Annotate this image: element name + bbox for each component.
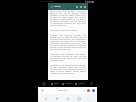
staticText: Quisquam est, qui dolorem ipsum quia dol… — [50, 64, 86, 74]
staticText: Archive — [78, 82, 85, 85]
button[interactable]: Reply — [51, 81, 59, 86]
staticText: Forward — [65, 82, 73, 85]
staticText: news.site — [58, 89, 68, 92]
staticText: Article — [54, 5, 61, 8]
staticText: 9:41 Messages — [40, 0, 54, 3]
button[interactable]: Notifications — [87, 89, 90, 92]
staticText: Reply — [54, 82, 59, 85]
button[interactable]: Menu — [86, 95, 93, 102]
button[interactable]: Archive — [75, 81, 85, 86]
button[interactable]: Back — [42, 95, 49, 102]
button[interactable]: Forward — [62, 81, 73, 86]
button[interactable]: Tabs — [75, 95, 82, 102]
button[interactable]: Reload — [82, 89, 85, 92]
staticText: Excepteur sint occaecat cupidatat non pr… — [50, 34, 86, 50]
button[interactable]: Back — [50, 5, 53, 8]
button[interactable]: Share — [53, 95, 60, 102]
staticText: Duis aute irure dolor in reprehendo — [50, 29, 86, 31]
button[interactable]: More — [83, 5, 86, 8]
button[interactable]: Bookmark — [79, 5, 82, 8]
staticText: Lorem ipsum dolor sit amet, consectetur … — [50, 10, 86, 26]
staticText: Nemo enim ipsam voluptatem quia voluptas… — [50, 53, 86, 61]
button[interactable]: Site information — [41, 89, 44, 92]
button[interactable]: New tab — [64, 95, 71, 102]
button[interactable]: Search — [75, 5, 78, 8]
button[interactable]: Profile — [92, 89, 95, 92]
